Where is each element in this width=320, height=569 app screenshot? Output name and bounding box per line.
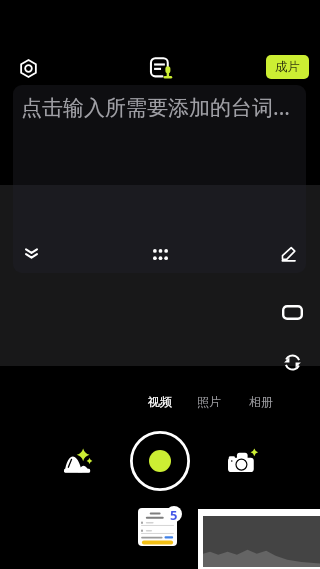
staticText: 成片 xyxy=(275,59,300,75)
button[interactable]: Teleprompter xyxy=(142,50,179,87)
button[interactable]: Reorder xyxy=(142,236,179,273)
staticText: 5 xyxy=(170,506,178,522)
button[interactable]: Aspect ratio xyxy=(275,295,309,329)
staticText: 点击输入所需要添加的台词... xyxy=(21,93,290,122)
staticText: 相册 xyxy=(249,394,273,409)
button[interactable]: Take photo xyxy=(220,439,264,483)
button[interactable]: Record xyxy=(130,431,190,491)
button[interactable]: 相册 xyxy=(241,391,281,411)
staticText: 视频 xyxy=(148,394,172,409)
button[interactable]: Switch camera xyxy=(275,345,309,379)
button[interactable]: 点击输入所需要添加的台词... xyxy=(13,85,306,185)
button[interactable]: Settings xyxy=(10,50,46,86)
staticText: 照片 xyxy=(197,394,221,409)
button[interactable]: Beauty filter xyxy=(56,438,101,483)
button[interactable]: 照片 xyxy=(189,391,229,411)
button[interactable] xyxy=(138,508,177,546)
button[interactable]: Edit xyxy=(270,236,307,273)
button[interactable]: Collapse xyxy=(13,235,50,272)
button[interactable]: 成片 xyxy=(266,55,309,79)
button[interactable]: 视频 xyxy=(140,391,180,411)
